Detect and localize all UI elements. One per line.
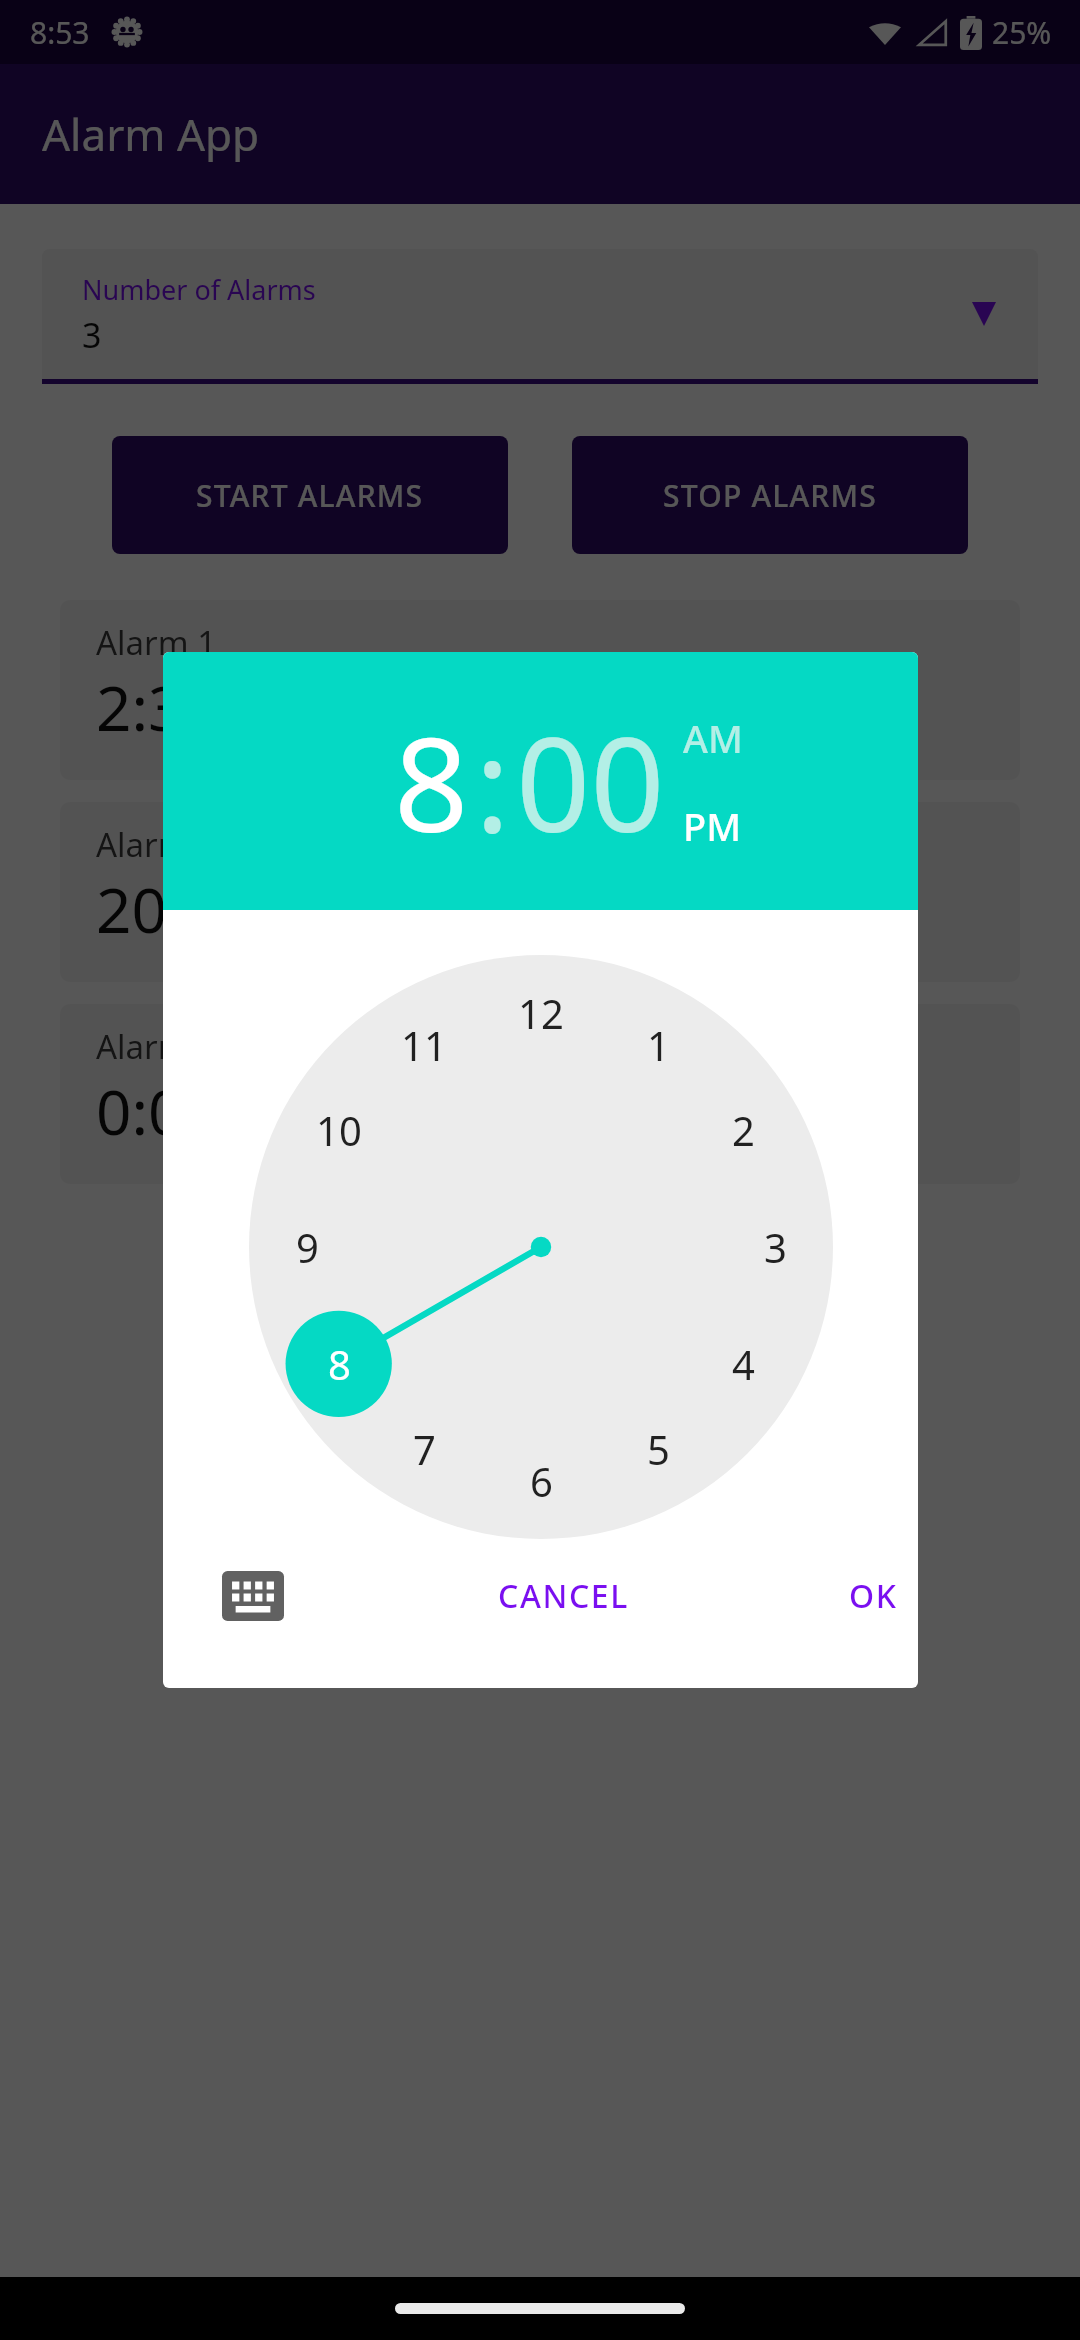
staticText: 25% [992,12,1052,53]
staticText: PM [683,800,742,852]
button[interactable]: Alarm 1 [60,600,1020,780]
button[interactable]: STOP ALARMS [572,436,968,554]
staticText: 4 [732,1337,755,1391]
staticText: 5 [647,1422,670,1476]
button[interactable]: 5 [613,1404,703,1494]
button[interactable]: PM [683,800,742,852]
button[interactable]: 8 [394,693,469,870]
staticText: 12 [518,986,564,1040]
button[interactable]: OK [813,1548,918,1644]
staticText: STOP ALARMS [663,475,877,516]
staticText: Alarm App [42,104,260,164]
staticText: START ALARMS [196,475,424,516]
staticText: 11 [401,1018,447,1072]
button[interactable]: START ALARMS [112,436,508,554]
staticText: CANCEL [498,1574,629,1618]
button[interactable]: 2 [698,1085,788,1175]
staticText: 10 [316,1103,362,1157]
staticText: 8 [328,1337,351,1391]
staticText: Alarm 3 [96,1024,217,1069]
staticText: 2:30 [96,665,220,749]
staticText: AM [683,712,743,764]
staticText: 6 [530,1454,553,1508]
button[interactable]: 10 [294,1085,384,1175]
staticText: 2 [732,1103,755,1157]
button[interactable]: 00 [516,693,665,870]
staticText: 7 [413,1422,436,1476]
staticText: Alarm 1 [96,620,217,665]
button[interactable]: Alarm 2 [60,802,1020,982]
staticText: 8 [394,693,469,870]
staticText: Number of Alarms [82,271,316,308]
staticText: 8:53 [30,12,90,53]
button[interactable]: 3 [730,1202,820,1292]
button[interactable]: 6 [496,1436,586,1526]
staticText: 00 [516,693,665,870]
button[interactable]: CANCEL [453,1548,673,1644]
staticText: : [475,693,510,870]
staticText: 0:00 [96,1069,220,1153]
button[interactable]: Number of Alarms [42,249,1038,379]
button[interactable]: AM [683,712,743,764]
staticText: 3 [82,312,102,358]
button[interactable]: 12 [496,968,586,1058]
staticText: Alarm 2 [96,822,217,867]
button[interactable]: Alarm 3 [60,1004,1020,1184]
button[interactable]: 9 [262,1202,352,1292]
button[interactable]: 11 [379,1000,469,1090]
staticText: 9 [296,1220,319,1274]
staticText: 1 [647,1018,670,1072]
button[interactable]: Switch to text input mode [205,1548,301,1644]
staticText: OK [849,1574,898,1618]
button[interactable]: 1 [613,1000,703,1090]
button[interactable]: 4 [698,1319,788,1409]
staticText: 3 [764,1220,787,1274]
button[interactable]: 7 [379,1404,469,1494]
staticText: 20:00 [96,867,255,951]
button[interactable]: 8 [294,1319,384,1409]
